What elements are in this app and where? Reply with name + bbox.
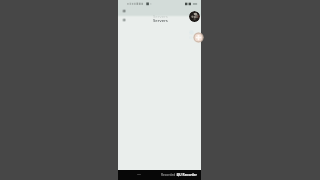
- staticText: Servers: [153, 18, 168, 24]
- staticText: Servers: [153, 14, 168, 20]
- button[interactable]: Add server: [193, 32, 204, 43]
- button[interactable]: Back: [119, 6, 129, 16]
- staticText: Recorded by: [161, 173, 180, 177]
- button[interactable]: Back: [119, 15, 129, 25]
- staticText: DU Recorder: [177, 173, 197, 177]
- button[interactable]: Profile: [189, 11, 200, 22]
